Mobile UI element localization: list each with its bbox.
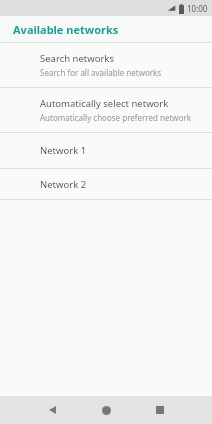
staticText: Network 1 [40,144,87,157]
staticText: 10:00 [187,3,208,14]
button[interactable]: Network 2 [0,169,212,199]
button[interactable]: Back [40,398,64,422]
staticText: Search networks [40,52,114,65]
staticText: Available networks [13,22,119,37]
button[interactable]: Home [94,398,118,422]
staticText: Search for all available networks [40,67,162,78]
button[interactable]: Search networks [0,43,212,87]
button[interactable]: Recent apps [148,398,172,422]
staticText: Automatically choose preferred network [40,112,192,123]
button[interactable]: Network 1 [0,133,212,168]
button[interactable]: Automatically select network [0,88,212,132]
staticText: Network 2 [40,178,87,191]
staticText: Automatically select network [40,97,169,110]
